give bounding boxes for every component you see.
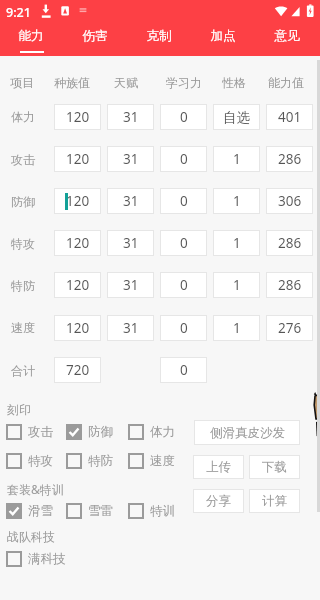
button[interactable]: 上传 [193,455,244,479]
button[interactable]: 0 [160,104,207,130]
staticText: 286 [278,234,302,252]
staticText: 0 [180,108,188,126]
staticText: 31 [123,150,139,168]
staticText: 特攻 [28,453,53,469]
button[interactable]: 特防 [66,452,128,470]
staticText: 1 [233,276,241,294]
staticText: 306 [278,192,302,210]
button[interactable]: 120 [54,315,101,341]
staticText: 意见 [274,28,300,44]
staticText: 286 [278,276,302,294]
button[interactable]: 意见 [256,22,320,56]
button[interactable]: 31 [107,230,154,256]
button[interactable]: 31 [107,188,154,214]
staticText: 克制 [146,28,172,44]
button[interactable]: 401 [266,104,313,130]
button[interactable]: 侧滑真皮沙发 [194,420,300,445]
button[interactable]: 1 [213,188,260,214]
staticText: 防御 [88,424,113,440]
button[interactable]: 120 [54,104,101,130]
button[interactable]: 计算 [249,489,300,513]
staticText: 0 [180,150,188,168]
button[interactable]: 伤害 [64,22,128,56]
button[interactable]: 31 [107,104,154,130]
staticText: 120 [66,234,90,252]
button[interactable]: 1 [213,230,260,256]
button[interactable]: 720 [54,357,101,383]
staticText: 120 [66,192,90,210]
button[interactable]: 120 [54,272,101,298]
button[interactable]: 特攻 [6,452,68,470]
button[interactable]: 286 [266,146,313,172]
button[interactable]: 分享 [193,489,244,513]
staticText: 防御 [11,194,35,209]
staticText: 天赋 [114,75,138,90]
staticText: 120 [66,276,90,294]
button[interactable]: 0 [160,315,207,341]
staticText: 性格 [222,75,246,90]
staticText: 特训 [150,503,175,519]
staticText: 120 [66,108,90,126]
staticText: 31 [123,108,139,126]
button[interactable]: 0 [160,188,207,214]
button[interactable]: 满科技 [6,550,68,568]
staticText: 刻印 [7,402,31,417]
other: Status icons [0,0,320,22]
staticText: 31 [123,234,139,252]
button[interactable]: 自选 [213,104,260,130]
button[interactable]: 雪雷 [66,502,128,520]
staticText: 9:21 [6,4,31,21]
staticText: 1 [233,319,241,337]
button[interactable]: 特训 [128,502,190,520]
staticText: 计算 [262,493,287,509]
staticText: 特攻 [11,236,35,251]
staticText: 31 [123,319,139,337]
staticText: 31 [123,192,139,210]
button[interactable]: 克制 [128,22,192,56]
button[interactable]: 286 [266,230,313,256]
button[interactable]: 能力 [0,22,64,56]
staticText: 攻击 [11,152,35,167]
staticText: 0 [180,276,188,294]
staticText: 速度 [150,453,175,469]
button[interactable]: 攻击 [6,423,68,441]
button[interactable]: 306 [266,188,313,214]
button[interactable]: 276 [266,315,313,341]
staticText: 120 [66,150,90,168]
button[interactable]: 体力 [128,423,190,441]
button[interactable]: 120 [54,146,101,172]
staticText: 0 [180,192,188,210]
staticText: 滑雪 [28,503,53,519]
staticText: 分享 [206,493,231,509]
button[interactable]: 0 [160,272,207,298]
staticText: 套装&特训 [7,481,64,497]
staticText: 加点 [210,28,236,44]
staticText: 276 [278,319,302,337]
button[interactable]: 0 [160,146,207,172]
button[interactable]: 31 [107,315,154,341]
button[interactable]: 120 [54,230,101,256]
staticText: 特防 [88,453,113,469]
button[interactable]: 滑雪 [6,502,68,520]
staticText: 31 [123,276,139,294]
button[interactable]: 1 [213,315,260,341]
staticText: 自选 [223,109,250,126]
button[interactable]: 286 [266,272,313,298]
button[interactable]: 31 [107,272,154,298]
button[interactable]: 0 [160,230,207,256]
staticText: 项目 [10,75,34,90]
button[interactable]: 31 [107,146,154,172]
button[interactable]: 防御 [66,423,128,441]
staticText: 1 [233,192,241,210]
button[interactable]: 速度 [128,452,190,470]
button[interactable]: 下载 [249,455,300,479]
button[interactable]: 120 [54,188,101,214]
staticText: 伤害 [82,28,108,44]
staticText: 战队科技 [7,529,55,544]
button[interactable]: 加点 [192,22,256,56]
staticText: 0 [180,319,188,337]
staticText: 1 [233,150,241,168]
button[interactable]: 0 [160,357,207,383]
button[interactable]: 1 [213,272,260,298]
button[interactable]: 1 [213,146,260,172]
